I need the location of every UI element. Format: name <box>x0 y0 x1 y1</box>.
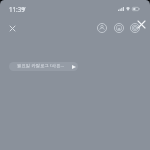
button[interactable]: 월요일 카탈로그 (사진… <box>9 62 78 71</box>
button[interactable]: Profile <box>95 21 108 34</box>
staticText: 11:39 <box>9 5 25 13</box>
button[interactable]: Record <box>128 21 141 34</box>
button[interactable]: Close <box>6 22 18 34</box>
button[interactable]: Dismiss <box>135 18 147 30</box>
staticText: 월요일 카탈로그 (사진… <box>17 63 65 69</box>
button[interactable]: Photos <box>112 21 125 34</box>
